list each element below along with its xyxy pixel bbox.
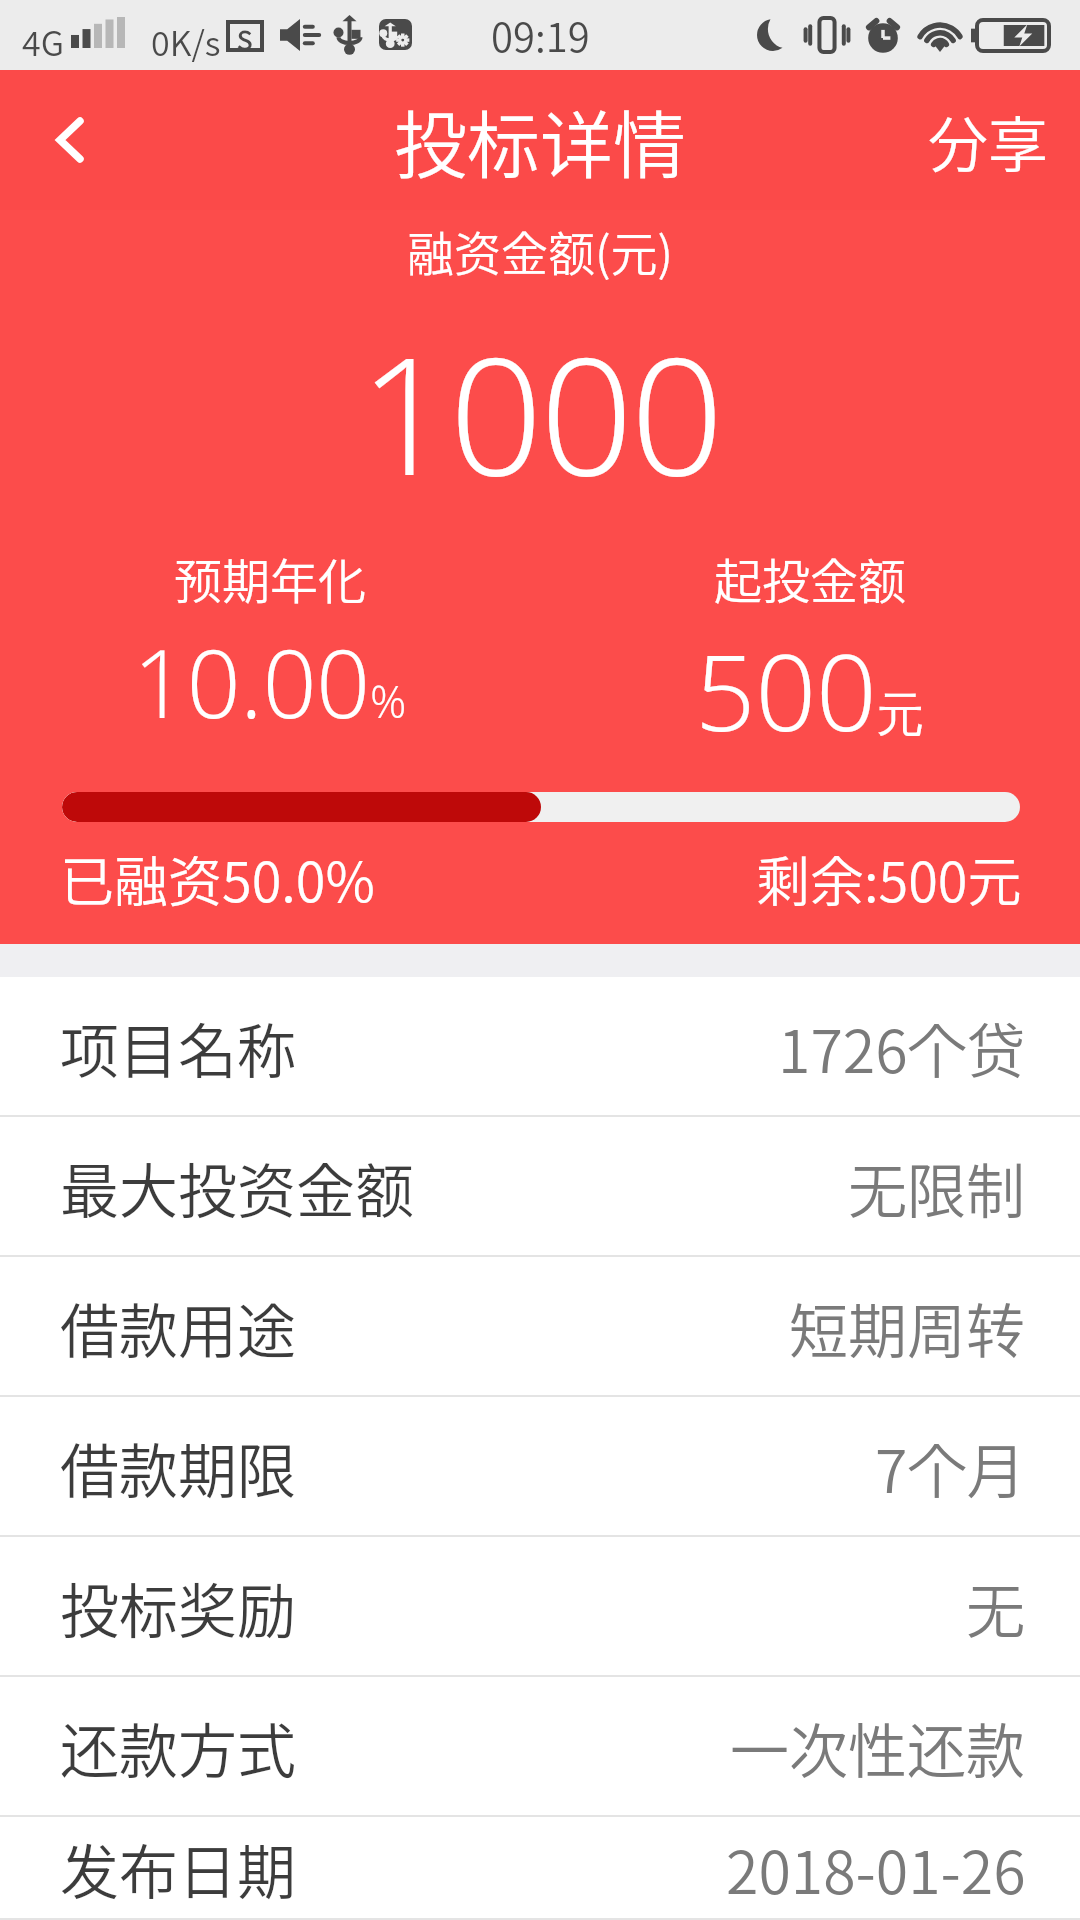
staticText: 4G [22,17,64,66]
staticText: 剩余:500元 [756,839,1022,917]
staticText: 10.00% [133,618,407,746]
button[interactable]: 最大投资金额 [0,1117,1080,1257]
button[interactable]: 分享 [896,70,1080,210]
staticText: 7个月 [875,1425,1026,1510]
staticText: 借款用途 [60,1285,297,1370]
staticText: 1000 [359,301,722,523]
staticText: 无 [966,1565,1026,1650]
staticText: 融资金额(元) [407,216,674,284]
staticText: 投标详情 [394,87,686,193]
staticText: 最大投资金额 [60,1145,415,1230]
button[interactable]: 还款方式 [0,1677,1080,1817]
button[interactable]: 项目名称 [0,977,1080,1117]
staticText: 短期周转 [789,1285,1026,1370]
staticText: 500元 [695,618,925,762]
staticText: 0K/s [151,17,221,66]
staticText: 09:19 [491,6,590,64]
staticText: 2018-01-26 [726,1826,1026,1911]
staticText: 1726个贷 [778,1005,1026,1090]
staticText: 起投金额 [714,543,907,613]
staticText: 一次性还款 [730,1705,1026,1790]
staticText: 借款期限 [60,1425,297,1510]
button[interactable]: 投标奖励 [0,1537,1080,1677]
button[interactable]: 借款用途 [0,1257,1080,1397]
staticText: 项目名称 [60,1005,297,1090]
staticText: 分享 [928,97,1048,184]
button[interactable]: 借款期限 [0,1397,1080,1537]
button[interactable]: 发布日期 [0,1817,1080,1920]
button[interactable]: Back [0,70,140,210]
staticText: 预期年化 [174,543,367,613]
staticText: 发布日期 [60,1826,297,1911]
staticText: 已融资50.0% [60,839,375,917]
staticText: 投标奖励 [60,1565,297,1650]
staticText: S [237,20,253,52]
staticText: 还款方式 [60,1705,297,1790]
staticText: 无限制 [848,1145,1026,1230]
